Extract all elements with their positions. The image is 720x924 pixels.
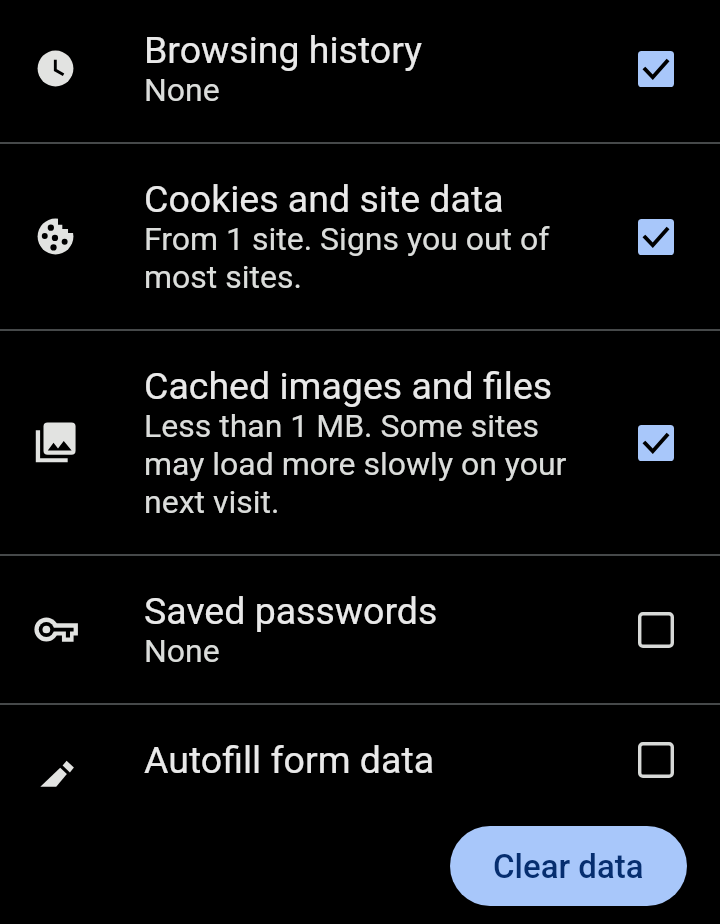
staticText: None (144, 632, 220, 670)
button[interactable]: Saved passwords (638, 612, 674, 648)
staticText: Browsing history (144, 28, 423, 72)
button[interactable]: Clear data (450, 826, 687, 906)
staticText: None (144, 71, 220, 109)
staticText: From 1 site. Signs you out of most sites… (144, 220, 594, 296)
staticText: Cookies and site data (144, 177, 504, 221)
button[interactable]: Cookies and site data (0, 144, 720, 329)
staticText: Less than 1 MB. Some sites may load more… (144, 407, 594, 521)
staticText: Clear data (493, 847, 644, 886)
button[interactable]: Saved passwords (0, 556, 720, 703)
button[interactable]: Autofill form data (638, 742, 674, 778)
staticText: Saved passwords (144, 589, 438, 633)
button[interactable]: Browsing history (0, 0, 720, 142)
button[interactable]: Cached images and files (0, 331, 720, 554)
staticText: Cached images and files (144, 364, 553, 408)
button[interactable]: Cookies and site data (638, 219, 674, 255)
button[interactable]: Browsing history (638, 51, 674, 87)
button[interactable]: Autofill form data (0, 705, 720, 814)
staticText: Autofill form data (144, 738, 435, 782)
button[interactable]: Cached images and files (638, 425, 674, 461)
